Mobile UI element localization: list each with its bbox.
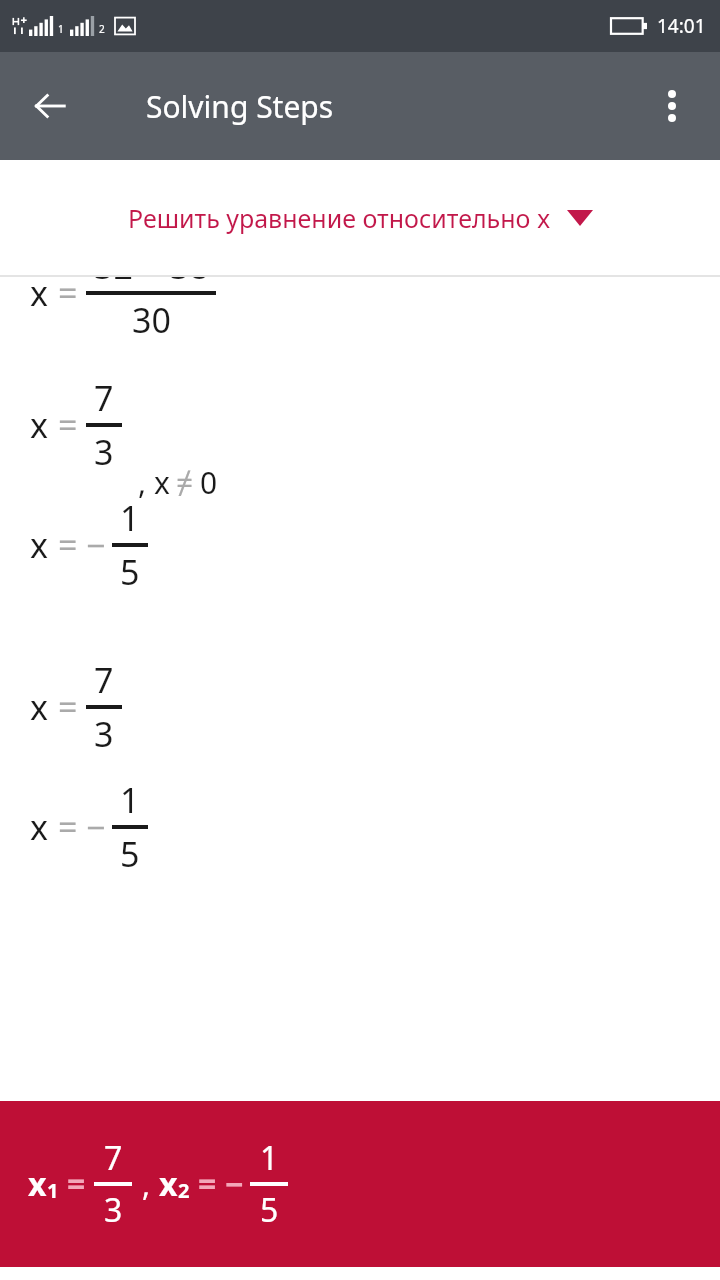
staticText: 0: [200, 462, 218, 503]
button[interactable]: Back: [22, 78, 78, 134]
staticText: −: [86, 522, 106, 568]
staticText: ,: [142, 1164, 151, 1205]
staticText: ,: [138, 462, 154, 503]
staticText: =: [58, 522, 78, 568]
staticText: 3: [94, 711, 114, 757]
staticText: 2: [178, 1177, 190, 1204]
staticText: 7: [94, 657, 114, 703]
staticText: =: [58, 804, 78, 850]
staticText: x: [28, 1162, 47, 1206]
staticText: −: [225, 1162, 244, 1206]
staticText: 7: [94, 375, 114, 421]
staticText: =: [58, 402, 78, 448]
staticText: 1: [260, 1136, 279, 1180]
staticText: 1: [47, 1177, 59, 1204]
staticText: 1: [120, 495, 140, 541]
staticText: 5: [120, 549, 140, 595]
staticText: 7: [104, 1136, 123, 1180]
staticText: −: [86, 804, 106, 850]
staticText: 30: [132, 297, 171, 343]
staticText: x: [30, 684, 48, 730]
staticText: 1: [58, 22, 64, 36]
staticText: 5: [260, 1188, 279, 1232]
staticText: x: [159, 1162, 178, 1206]
staticText: 1: [120, 777, 140, 823]
staticText: x: [30, 522, 48, 568]
staticText: 14:01: [657, 13, 706, 39]
button[interactable]: x: [0, 1101, 720, 1267]
staticText: =: [58, 684, 78, 730]
staticText: x: [30, 804, 48, 850]
button[interactable]: More options: [644, 78, 700, 134]
staticText: =: [58, 277, 78, 316]
button[interactable]: Решить уравнение относительно x: [0, 160, 720, 275]
staticText: x: [30, 277, 48, 316]
staticText: 2: [99, 22, 105, 36]
staticText: ≠: [176, 462, 194, 503]
staticText: 5: [120, 831, 140, 877]
staticText: Решить уравнение относительно x: [128, 201, 551, 235]
staticText: =: [198, 1162, 217, 1206]
staticText: Solving Steps: [146, 86, 334, 127]
staticText: 32 − 38: [94, 277, 209, 289]
staticText: x: [154, 462, 170, 503]
staticText: =: [67, 1162, 86, 1206]
staticText: 3: [104, 1188, 123, 1232]
staticText: x: [30, 402, 48, 448]
staticText: 3: [94, 429, 114, 475]
